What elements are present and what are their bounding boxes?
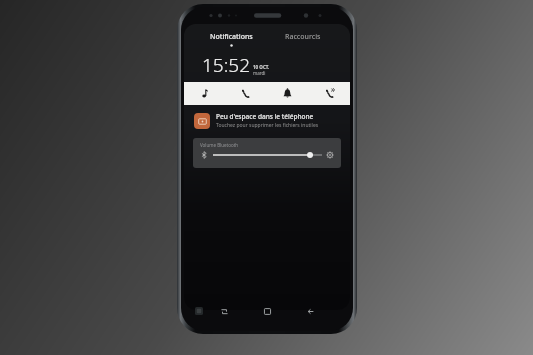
button[interactable]: Notifications xyxy=(266,82,308,105)
button[interactable]: Notifications xyxy=(196,32,267,47)
other: Bluetooth xyxy=(200,151,208,159)
staticText: Raccourcis xyxy=(285,32,321,42)
button[interactable]: Raccourcis xyxy=(267,32,338,42)
button[interactable]: Sound settings xyxy=(326,151,334,159)
button[interactable]: Volume Bluetooth xyxy=(193,138,341,168)
staticText: 15:52 xyxy=(202,52,251,78)
button[interactable]: Recents xyxy=(215,302,233,320)
staticText: Peu d'espace dans le téléphone xyxy=(216,112,314,121)
staticText: 10 OCT. xyxy=(253,64,270,70)
staticText: mardi xyxy=(253,70,266,76)
button[interactable]: Back xyxy=(301,302,319,320)
button[interactable]: App xyxy=(195,307,203,315)
button[interactable]: Call sound xyxy=(308,82,350,105)
staticText: Notifications xyxy=(210,32,253,42)
button[interactable]: Music xyxy=(184,82,225,105)
button[interactable]: Call xyxy=(225,82,266,105)
button[interactable]: Home xyxy=(258,302,276,320)
staticText: Touchez pour supprimer les fichiers inut… xyxy=(216,122,319,129)
staticText: Volume Bluetooth xyxy=(200,142,239,148)
button[interactable]: Peu d'espace dans le téléphone xyxy=(194,112,340,129)
